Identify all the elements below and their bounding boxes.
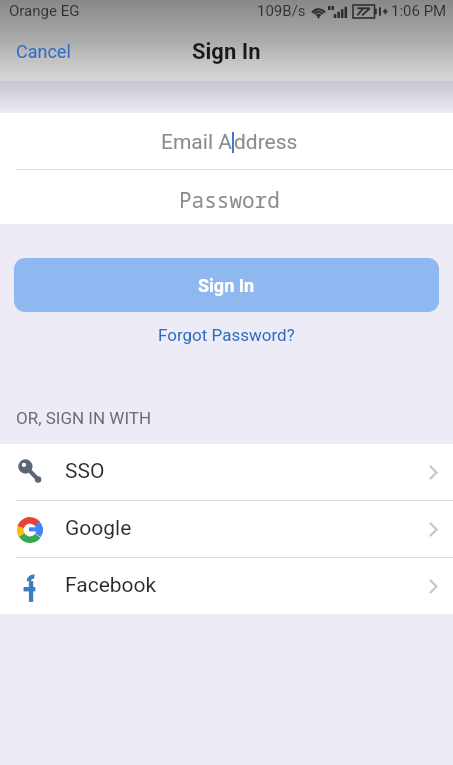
- staticText: 109B/s: [257, 2, 306, 20]
- staticText: Email A: [161, 130, 232, 155]
- staticText: ddress: [234, 130, 298, 155]
- button[interactable]: Forgot Password?: [0, 312, 453, 362]
- staticText: Google: [65, 516, 132, 541]
- button[interactable]: Email A: [0, 113, 453, 169]
- staticText: 1:06 PM: [391, 2, 447, 20]
- button[interactable]: Cancel: [16, 41, 71, 62]
- staticText: Password: [179, 186, 280, 215]
- button[interactable]: Password: [0, 170, 453, 224]
- button[interactable]: Facebook: [0, 558, 453, 614]
- staticText: Orange EG: [9, 2, 80, 20]
- staticText: OR, SIGN IN WITH: [16, 408, 152, 428]
- staticText: Cancel: [16, 41, 71, 62]
- staticText: Sign In: [198, 275, 255, 296]
- staticText: SSO: [65, 459, 105, 484]
- button[interactable]: SSO: [0, 444, 453, 500]
- button[interactable]: Sign In: [14, 258, 439, 312]
- staticText: Facebook: [65, 573, 157, 598]
- staticText: Forgot Password?: [158, 325, 295, 345]
- staticText: Sign In: [192, 39, 261, 65]
- button[interactable]: Google: [0, 501, 453, 557]
